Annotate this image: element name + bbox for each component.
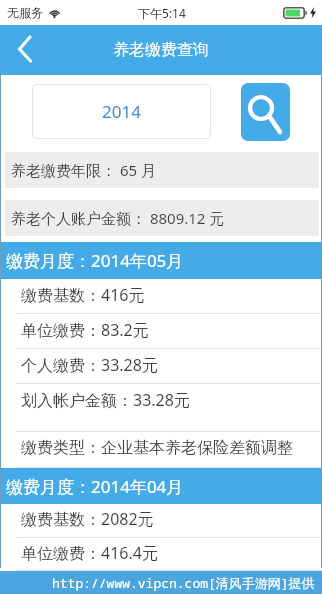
button[interactable]: Back: [0, 25, 50, 75]
staticText: 下午5:14: [138, 5, 186, 21]
staticText: 个人缴费：33.28元: [21, 354, 158, 376]
staticText: 单位缴费：83.2元: [21, 319, 149, 341]
staticText: 缴费类型：企业基本养老保险差额调整: [21, 438, 293, 458]
staticText: 划入帐户金额：33.28元: [21, 389, 190, 411]
staticText: 缴费基数：2082元: [21, 508, 154, 530]
button[interactable]: 2014: [32, 84, 211, 139]
staticText: 缴费月度：2014年04月: [6, 475, 184, 498]
button[interactable]: Search: [241, 83, 290, 141]
staticText: http://www.vipcn.com[清风手游网]提供: [52, 574, 315, 592]
staticText: 单位缴费：416.4元: [21, 542, 158, 564]
button[interactable]: 养老个人账户金额： 8809.12 元: [11, 200, 319, 236]
staticText: 2014: [102, 100, 141, 123]
staticText: 养老个人账户金额： 8809.12 元: [11, 208, 225, 228]
button[interactable]: 缴费月度：2014年04月: [6, 468, 322, 504]
staticText: 缴费月度：2014年05月: [6, 249, 184, 272]
button[interactable]: 缴费月度：2014年05月: [6, 242, 322, 279]
button[interactable]: 养老缴费年限： 65 月: [11, 152, 319, 188]
staticText: 缴费基数：416元: [21, 284, 145, 306]
staticText: 养老缴费查询: [113, 40, 209, 60]
staticText: 养老缴费年限： 65 月: [11, 160, 156, 180]
staticText: 无服务: [7, 5, 43, 20]
